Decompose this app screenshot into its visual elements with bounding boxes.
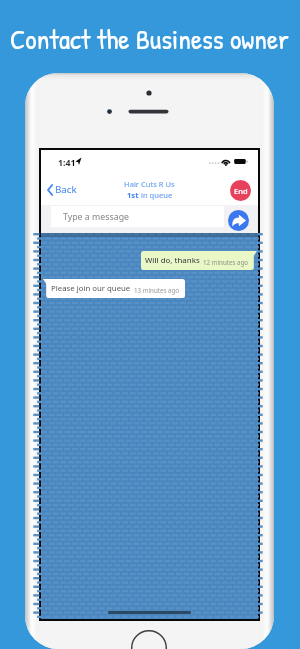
button[interactable]: End [230,180,251,201]
staticText: End [234,186,248,196]
staticText: Type a message [63,211,130,223]
staticText: in queue [139,190,173,200]
staticText: 1st [127,190,139,200]
staticText: 12 minutes ago [203,258,249,266]
staticText: Contact the Business owner [10,20,289,58]
staticText: Please join our queue [51,283,131,294]
button[interactable]: Back [43,178,83,201]
button[interactable]: Please join our queue [43,279,185,298]
button[interactable]: Will do, thanks [141,251,257,270]
staticText: Hair Cuts R Us [124,179,175,189]
staticText: Will do, thanks [145,255,200,266]
button[interactable]: Type a message [51,206,224,227]
staticText: Back [55,183,77,196]
staticText: 1:41 [58,157,76,169]
staticText: 13 minutes ago [134,286,180,294]
button[interactable]: Send [228,210,249,231]
